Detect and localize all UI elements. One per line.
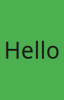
staticText: Hello — [4, 35, 60, 65]
